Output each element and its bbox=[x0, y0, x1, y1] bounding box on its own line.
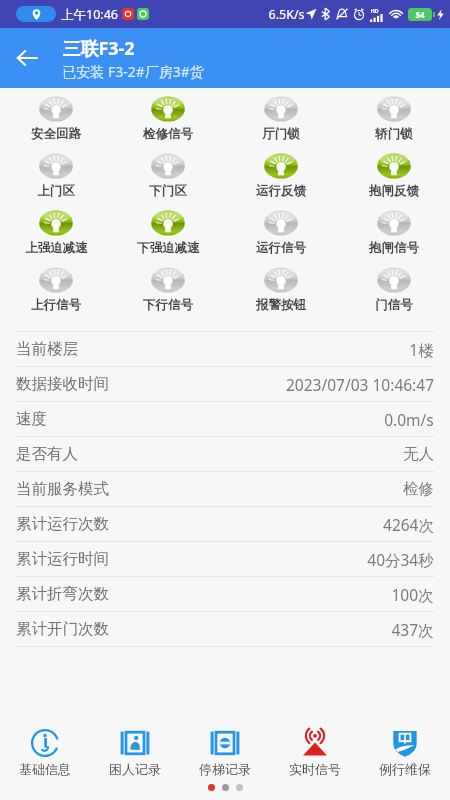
button[interactable]: 是否有人 bbox=[0, 437, 450, 471]
staticText: 速度 bbox=[16, 409, 47, 429]
button[interactable]: 数据接收时间 bbox=[0, 367, 450, 401]
button[interactable]: Realtime signal bbox=[270, 720, 360, 784]
staticText: 当前服务模式 bbox=[16, 479, 109, 499]
button[interactable]: Stop records bbox=[180, 720, 270, 784]
button[interactable]: 累计开门次数 bbox=[0, 612, 450, 646]
button[interactable]: 厅门锁 bbox=[224, 94, 337, 142]
staticText: 检修 bbox=[403, 479, 434, 499]
staticText: 4264次 bbox=[383, 514, 434, 535]
staticText: 厅门锁 bbox=[262, 126, 300, 142]
button[interactable]: 下行信号 bbox=[112, 265, 224, 313]
staticText: 累计运行时间 bbox=[16, 549, 109, 569]
staticText: 437次 bbox=[391, 619, 434, 640]
staticText: HD bbox=[370, 7, 379, 14]
button[interactable]: 门信号 bbox=[337, 265, 450, 313]
staticText: 报警按钮 bbox=[256, 297, 306, 313]
staticText: 2023/07/03 10:46:47 bbox=[286, 374, 434, 395]
button[interactable]: 运行信号 bbox=[224, 208, 337, 256]
staticText: 门信号 bbox=[375, 297, 413, 313]
button[interactable]: 下强迫减速 bbox=[112, 208, 224, 256]
button[interactable]: 速度 bbox=[0, 402, 450, 436]
staticText: 下强迫减速 bbox=[137, 240, 200, 256]
staticText: 当前楼层 bbox=[16, 339, 78, 359]
staticText: 已安装 F3-2#厂房3#货 bbox=[62, 62, 204, 81]
button[interactable]: 下门区 bbox=[112, 151, 224, 199]
button[interactable]: 运行反馈 bbox=[224, 151, 337, 199]
staticText: 上强迫减速 bbox=[25, 240, 88, 256]
button[interactable]: Trapped records bbox=[90, 720, 180, 784]
button[interactable]: 轿门锁 bbox=[337, 94, 450, 142]
button[interactable]: 累计运行次数 bbox=[0, 507, 450, 541]
button[interactable]: Maintenance bbox=[360, 720, 450, 784]
staticText: 例行维保 bbox=[379, 761, 431, 777]
staticText: 1楼 bbox=[409, 339, 434, 360]
staticText: 是否有人 bbox=[16, 444, 78, 464]
staticText: 实时信号 bbox=[289, 761, 341, 777]
button[interactable]: 当前楼层 bbox=[0, 332, 450, 366]
staticText: 停梯记录 bbox=[199, 761, 251, 777]
staticText: 累计开门次数 bbox=[16, 619, 109, 639]
staticText: 三联F3-2 bbox=[62, 36, 135, 61]
staticText: 上午10:46 bbox=[61, 6, 118, 23]
button[interactable]: 抱闸反馈 bbox=[337, 151, 450, 199]
staticText: 轿门锁 bbox=[375, 126, 413, 142]
staticText: 抱闸信号 bbox=[369, 240, 419, 256]
button[interactable]: 报警按钮 bbox=[224, 265, 337, 313]
button[interactable]: 累计折弯次数 bbox=[0, 577, 450, 611]
button[interactable]: Basic info bbox=[0, 720, 90, 784]
staticText: 数据接收时间 bbox=[16, 374, 109, 394]
button[interactable]: 上行信号 bbox=[0, 265, 112, 313]
staticText: 运行反馈 bbox=[256, 183, 306, 199]
button[interactable]: 累计运行时间 bbox=[0, 542, 450, 576]
button[interactable]: 检修信号 bbox=[112, 94, 224, 142]
staticText: 40分34秒 bbox=[367, 549, 434, 570]
staticText: 上门区 bbox=[37, 183, 75, 199]
button[interactable]: 当前服务模式 bbox=[0, 472, 450, 506]
staticText: 下行信号 bbox=[143, 297, 193, 313]
staticText: 6.5K/s bbox=[268, 6, 305, 23]
button[interactable]: Back bbox=[0, 31, 54, 85]
staticText: 运行信号 bbox=[256, 240, 306, 256]
staticText: 安全回路 bbox=[31, 126, 81, 142]
staticText: 检修信号 bbox=[143, 126, 193, 142]
staticText: 无人 bbox=[403, 444, 434, 464]
button[interactable]: 上门区 bbox=[0, 151, 112, 199]
staticText: 0.0m/s bbox=[384, 409, 434, 430]
staticText: 54 bbox=[415, 9, 425, 20]
button[interactable]: 上强迫减速 bbox=[0, 208, 112, 256]
staticText: 抱闸反馈 bbox=[369, 183, 419, 199]
staticText: 上行信号 bbox=[31, 297, 81, 313]
staticText: 100次 bbox=[391, 584, 434, 605]
staticText: 困人记录 bbox=[109, 761, 161, 777]
staticText: 累计运行次数 bbox=[16, 514, 109, 534]
staticText: 基础信息 bbox=[19, 761, 71, 777]
button[interactable]: 安全回路 bbox=[0, 94, 112, 142]
staticText: 下门区 bbox=[149, 183, 187, 199]
staticText: 累计折弯次数 bbox=[16, 584, 109, 604]
button[interactable]: 抱闸信号 bbox=[337, 208, 450, 256]
